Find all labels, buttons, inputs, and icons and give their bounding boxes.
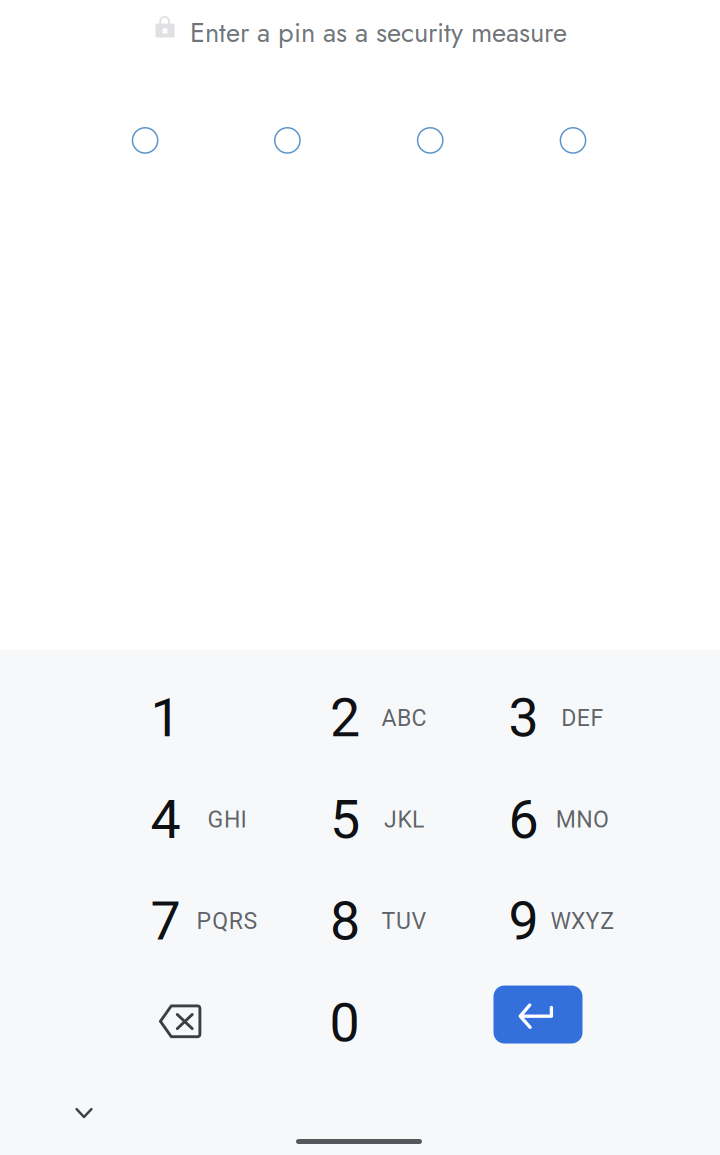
button[interactable]: 6 — [464, 770, 642, 870]
staticText: 6 — [509, 788, 539, 851]
button[interactable]: 8 — [285, 871, 463, 971]
button[interactable]: Enter — [449, 964, 627, 1064]
staticText: 5 — [330, 788, 360, 851]
button[interactable]: 3 — [464, 668, 642, 768]
staticText: PQRS — [197, 908, 257, 935]
staticText: Enter a pin as a security measure — [190, 13, 567, 52]
staticText: DEF — [561, 704, 603, 731]
staticText: 2 — [330, 686, 360, 749]
button[interactable]: 0 — [256, 973, 434, 1073]
staticText: 4 — [151, 788, 181, 851]
button[interactable]: 2 — [285, 668, 463, 768]
button[interactable]: 1 — [107, 668, 285, 768]
staticText: WXYZ — [550, 908, 614, 935]
button[interactable]: 9 — [464, 871, 642, 971]
staticText: 8 — [330, 890, 360, 953]
button[interactable]: Delete — [91, 971, 269, 1071]
button[interactable]: 7 — [107, 871, 285, 971]
staticText: ABC — [381, 704, 427, 731]
staticText: 3 — [509, 686, 539, 749]
button[interactable]: 5 — [285, 770, 463, 870]
staticText: MNO — [556, 806, 609, 833]
button[interactable]: Hide keyboard — [54, 1087, 114, 1137]
staticText: 7 — [151, 890, 181, 953]
staticText: GHI — [207, 806, 247, 833]
staticText: TUV — [381, 908, 427, 935]
button[interactable]: 4 — [107, 770, 285, 870]
staticText: JKL — [384, 806, 424, 833]
staticText: 1 — [151, 686, 181, 749]
staticText: 0 — [330, 991, 360, 1054]
staticText: 9 — [509, 890, 539, 953]
